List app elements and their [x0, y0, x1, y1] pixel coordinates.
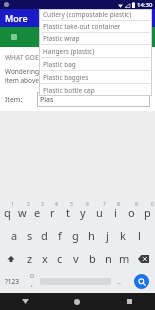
- staticText: 0: [151, 201, 154, 208]
- staticText: e: [34, 205, 41, 220]
- button[interactable]: f: [52, 224, 67, 247]
- button[interactable]: ?123: [0, 270, 24, 293]
- staticText: 7: [103, 201, 106, 208]
- staticText: p: [144, 205, 151, 220]
- button[interactable]: s: [22, 224, 37, 247]
- button[interactable]: Recent apps: [103, 293, 155, 310]
- staticText: i: [114, 205, 117, 220]
- staticText: 2: [27, 201, 30, 208]
- staticText: d: [41, 228, 48, 243]
- staticText: z: [27, 251, 33, 266]
- button[interactable]: Plas: [37, 92, 150, 107]
- button[interactable]: v: [68, 247, 84, 270]
- staticText: g: [72, 228, 79, 243]
- button[interactable]: t: [60, 200, 75, 224]
- button[interactable]: Plastic take-out container: [39, 21, 152, 32]
- staticText: ..: [117, 277, 121, 287]
- staticText: w: [18, 205, 27, 220]
- staticText: 5: [70, 201, 73, 208]
- button[interactable]: i: [107, 200, 123, 224]
- button[interactable]: w: [15, 200, 30, 224]
- staticText: l: [138, 228, 141, 243]
- button[interactable]: Search: [127, 270, 155, 293]
- button[interactable]: Tab one: [0, 27, 27, 47]
- button[interactable]: More: [0, 9, 155, 27]
- button[interactable]: q: [0, 200, 15, 224]
- button[interactable]: l: [131, 224, 147, 247]
- button[interactable]: h: [83, 224, 99, 247]
- staticText: Plastic bottle cap: [43, 86, 95, 95]
- staticText: 9: [135, 201, 138, 208]
- button[interactable]: r: [45, 200, 60, 224]
- button[interactable]: e: [30, 200, 45, 224]
- button[interactable]: Shift: [0, 247, 22, 270]
- staticText: More: [5, 12, 28, 24]
- staticText: 14:30: [137, 1, 153, 9]
- button[interactable]: Hangers (plastic): [39, 45, 152, 57]
- staticText: 8: [117, 201, 120, 208]
- staticText: s: [27, 228, 33, 243]
- button[interactable]: Cutlery (compostable plastic): [39, 9, 152, 20]
- staticText: Item:: [5, 95, 37, 105]
- staticText: j: [106, 228, 109, 243]
- staticText: ,: [31, 279, 33, 289]
- button[interactable]: Plastic bag: [39, 58, 152, 70]
- staticText: q: [4, 205, 11, 220]
- button[interactable]: o: [123, 200, 139, 224]
- staticText: b: [89, 251, 96, 266]
- button[interactable]: c: [52, 247, 68, 270]
- button[interactable]: Comma: [24, 270, 40, 293]
- button[interactable]: Home: [51, 293, 103, 310]
- button[interactable]: Backspace: [132, 247, 155, 270]
- staticText: 3: [41, 201, 44, 208]
- button[interactable]: g: [67, 224, 83, 247]
- staticText: o: [128, 205, 135, 220]
- button[interactable]: a: [7, 224, 22, 247]
- staticText: y: [80, 205, 86, 220]
- staticText: 6: [86, 201, 89, 208]
- button[interactable]: x: [37, 247, 52, 270]
- staticText: r: [50, 205, 55, 220]
- button[interactable]: n: [100, 247, 116, 270]
- button[interactable]: b: [84, 247, 100, 270]
- button[interactable]: m: [116, 247, 132, 270]
- staticText: Plastic wrap: [43, 34, 80, 43]
- button[interactable]: Plastic bottle cap: [39, 84, 152, 96]
- staticText: c: [57, 251, 63, 266]
- staticText: t: [66, 205, 70, 220]
- staticText: ?123: [5, 277, 19, 286]
- staticText: 4: [55, 201, 58, 208]
- button[interactable]: Tab two: [27, 27, 155, 47]
- staticText: Cutlery (compostable plastic): [43, 10, 132, 19]
- button[interactable]: Back: [0, 293, 51, 310]
- staticText: Plas: [40, 95, 54, 105]
- staticText: f: [58, 228, 62, 243]
- staticText: Plastic baggies: [43, 73, 89, 82]
- staticText: Plastic bag: [43, 60, 76, 69]
- staticText: a: [11, 228, 18, 243]
- staticText: WHAT GOES WHERE: [5, 53, 67, 62]
- button[interactable]: j: [99, 224, 115, 247]
- button[interactable]: u: [91, 200, 107, 224]
- button[interactable]: d: [37, 224, 52, 247]
- staticText: Plastic take-out container: [43, 22, 121, 31]
- staticText: m: [119, 251, 130, 266]
- staticText: Hangers (plastic): [43, 47, 95, 56]
- staticText: h: [88, 228, 95, 243]
- staticText: k: [120, 228, 126, 243]
- button[interactable]: z: [22, 247, 37, 270]
- staticText: u: [96, 205, 103, 220]
- button[interactable]: p: [139, 200, 155, 224]
- staticText: x: [42, 251, 48, 266]
- button[interactable]: y: [75, 200, 91, 224]
- button[interactable]: Period: [111, 270, 127, 293]
- button[interactable]: Plastic baggies: [39, 71, 152, 83]
- button[interactable]: Plastic wrap: [39, 33, 152, 44]
- staticText: 1: [11, 201, 14, 208]
- staticText: Wondering where something goes? Type the…: [5, 67, 142, 85]
- button[interactable]: k: [115, 224, 131, 247]
- staticText: n: [105, 251, 112, 266]
- staticText: v: [73, 251, 79, 266]
